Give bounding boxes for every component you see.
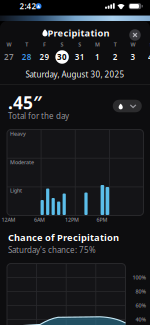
staticText: Precipitation xyxy=(47,27,109,39)
staticText: 1 xyxy=(95,52,100,62)
staticText: Saturday, August 30, 2025 xyxy=(25,69,124,80)
staticText: T xyxy=(114,41,117,48)
staticText: 29 xyxy=(39,52,49,62)
button[interactable]: M xyxy=(88,39,106,65)
staticText: 30 xyxy=(57,52,67,62)
staticText: Light xyxy=(10,187,22,194)
staticText: Total for the day xyxy=(8,111,69,121)
staticText: Saturday's chance: 75% xyxy=(8,245,96,255)
staticText: 6AM xyxy=(34,216,45,223)
button[interactable]: F xyxy=(35,39,53,65)
staticText: 28 xyxy=(22,52,32,62)
staticText: 100% xyxy=(132,274,146,281)
staticText: 2 xyxy=(113,52,118,62)
staticText: T xyxy=(25,41,28,48)
button[interactable]: W xyxy=(0,39,18,65)
button[interactable]: S xyxy=(71,39,89,65)
staticText: 3 xyxy=(130,52,135,62)
staticText: 12PM xyxy=(65,216,79,223)
staticText: 12AM xyxy=(1,216,15,223)
staticText: Chance of Precipitation xyxy=(8,231,119,244)
button[interactable]: W xyxy=(124,39,142,65)
staticText: W xyxy=(6,41,11,48)
staticText: 6PM xyxy=(96,216,107,223)
staticText: 4 xyxy=(148,52,150,62)
staticText: .45″ xyxy=(8,91,42,114)
staticText: 60% xyxy=(135,302,146,309)
staticText: W xyxy=(130,41,135,48)
staticText: 31 xyxy=(75,52,85,62)
button[interactable]: Precipitation amount options xyxy=(113,100,142,112)
button[interactable]: T xyxy=(18,39,36,65)
staticText: 27 xyxy=(4,52,14,62)
staticText: Heavy xyxy=(10,130,26,137)
button[interactable]: T xyxy=(106,39,124,65)
staticText: T xyxy=(149,41,150,48)
button[interactable]: S xyxy=(53,39,71,65)
staticText: 2:42 xyxy=(19,1,36,11)
staticText: Moderate xyxy=(10,159,34,166)
staticText: M xyxy=(95,41,100,48)
button[interactable]: Close xyxy=(129,29,141,41)
staticText: 40% xyxy=(135,316,146,323)
staticText: F xyxy=(43,41,46,48)
button[interactable]: T xyxy=(142,39,150,65)
staticText: S xyxy=(78,41,81,48)
staticText: 80% xyxy=(135,288,146,295)
staticText: S xyxy=(61,41,64,48)
